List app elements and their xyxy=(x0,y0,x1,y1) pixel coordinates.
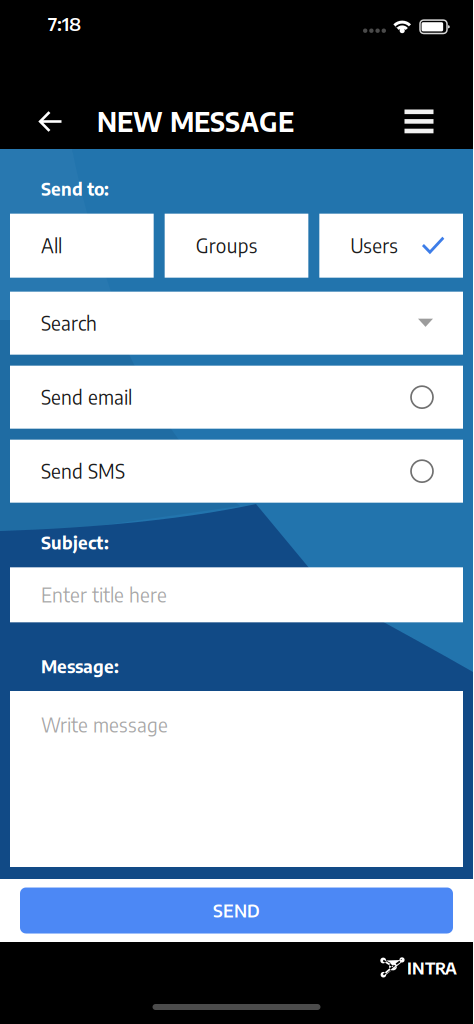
button[interactable]: Users xyxy=(319,214,463,278)
staticText: Users xyxy=(350,234,398,257)
button[interactable]: Back xyxy=(26,94,74,149)
staticText: NEW MESSAGE xyxy=(97,105,294,138)
button[interactable]: SEND xyxy=(20,887,453,933)
staticText: Send to: xyxy=(41,178,109,200)
staticText: All xyxy=(41,234,62,257)
button[interactable]: Write message xyxy=(10,691,463,867)
button[interactable]: Menu xyxy=(392,94,446,149)
button[interactable]: Search xyxy=(10,292,463,355)
button[interactable]: Send email xyxy=(10,366,463,429)
button[interactable]: Enter title here xyxy=(10,567,463,622)
staticText: Send email xyxy=(41,385,132,409)
staticText: Enter title here xyxy=(41,583,167,607)
staticText: Send SMS xyxy=(41,459,125,483)
button[interactable]: Groups xyxy=(165,214,308,278)
staticText: SEND xyxy=(213,900,260,921)
staticText: INTRA xyxy=(407,958,457,978)
button[interactable]: All xyxy=(10,214,154,278)
button[interactable]: Send SMS xyxy=(10,440,463,503)
staticText: Subject: xyxy=(41,532,109,553)
staticText: Write message xyxy=(41,713,168,737)
staticText: Search xyxy=(41,311,97,335)
staticText: 7:18 xyxy=(48,12,81,35)
staticText: Groups xyxy=(196,234,258,257)
staticText: Message: xyxy=(41,655,119,677)
